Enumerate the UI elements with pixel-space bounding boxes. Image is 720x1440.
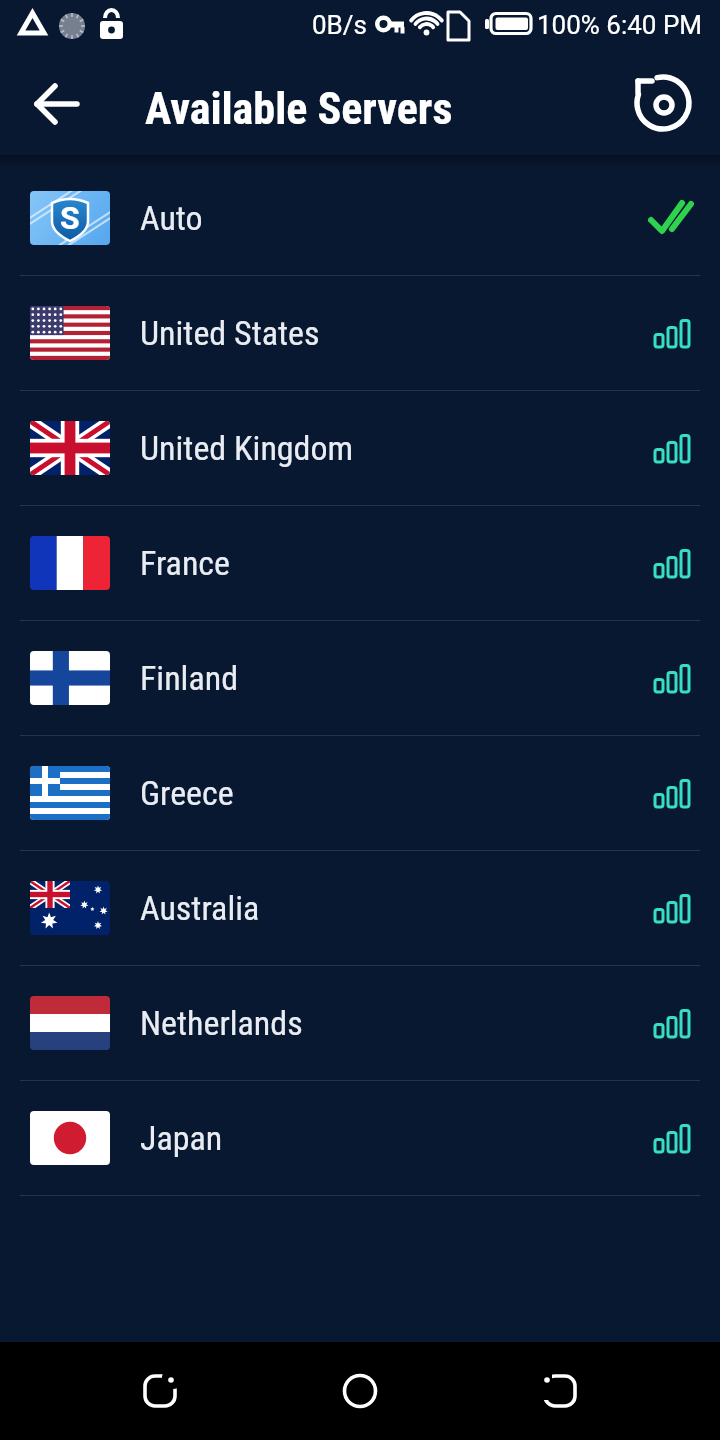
staticText: France — [140, 543, 231, 583]
staticText: Australia — [140, 888, 260, 928]
staticText: 0B/s — [312, 10, 367, 40]
staticText: S — [60, 199, 80, 237]
staticText: Netherlands — [140, 1003, 303, 1043]
staticText: Available Servers — [145, 83, 453, 135]
staticText: United Kingdom — [140, 428, 354, 468]
staticText: Auto — [140, 198, 203, 238]
staticText: Greece — [140, 773, 234, 813]
staticText: Japan — [140, 1118, 223, 1158]
staticText: 100% 6:40 PM — [537, 10, 703, 40]
staticText: Finland — [140, 658, 239, 698]
staticText: United States — [140, 313, 320, 353]
